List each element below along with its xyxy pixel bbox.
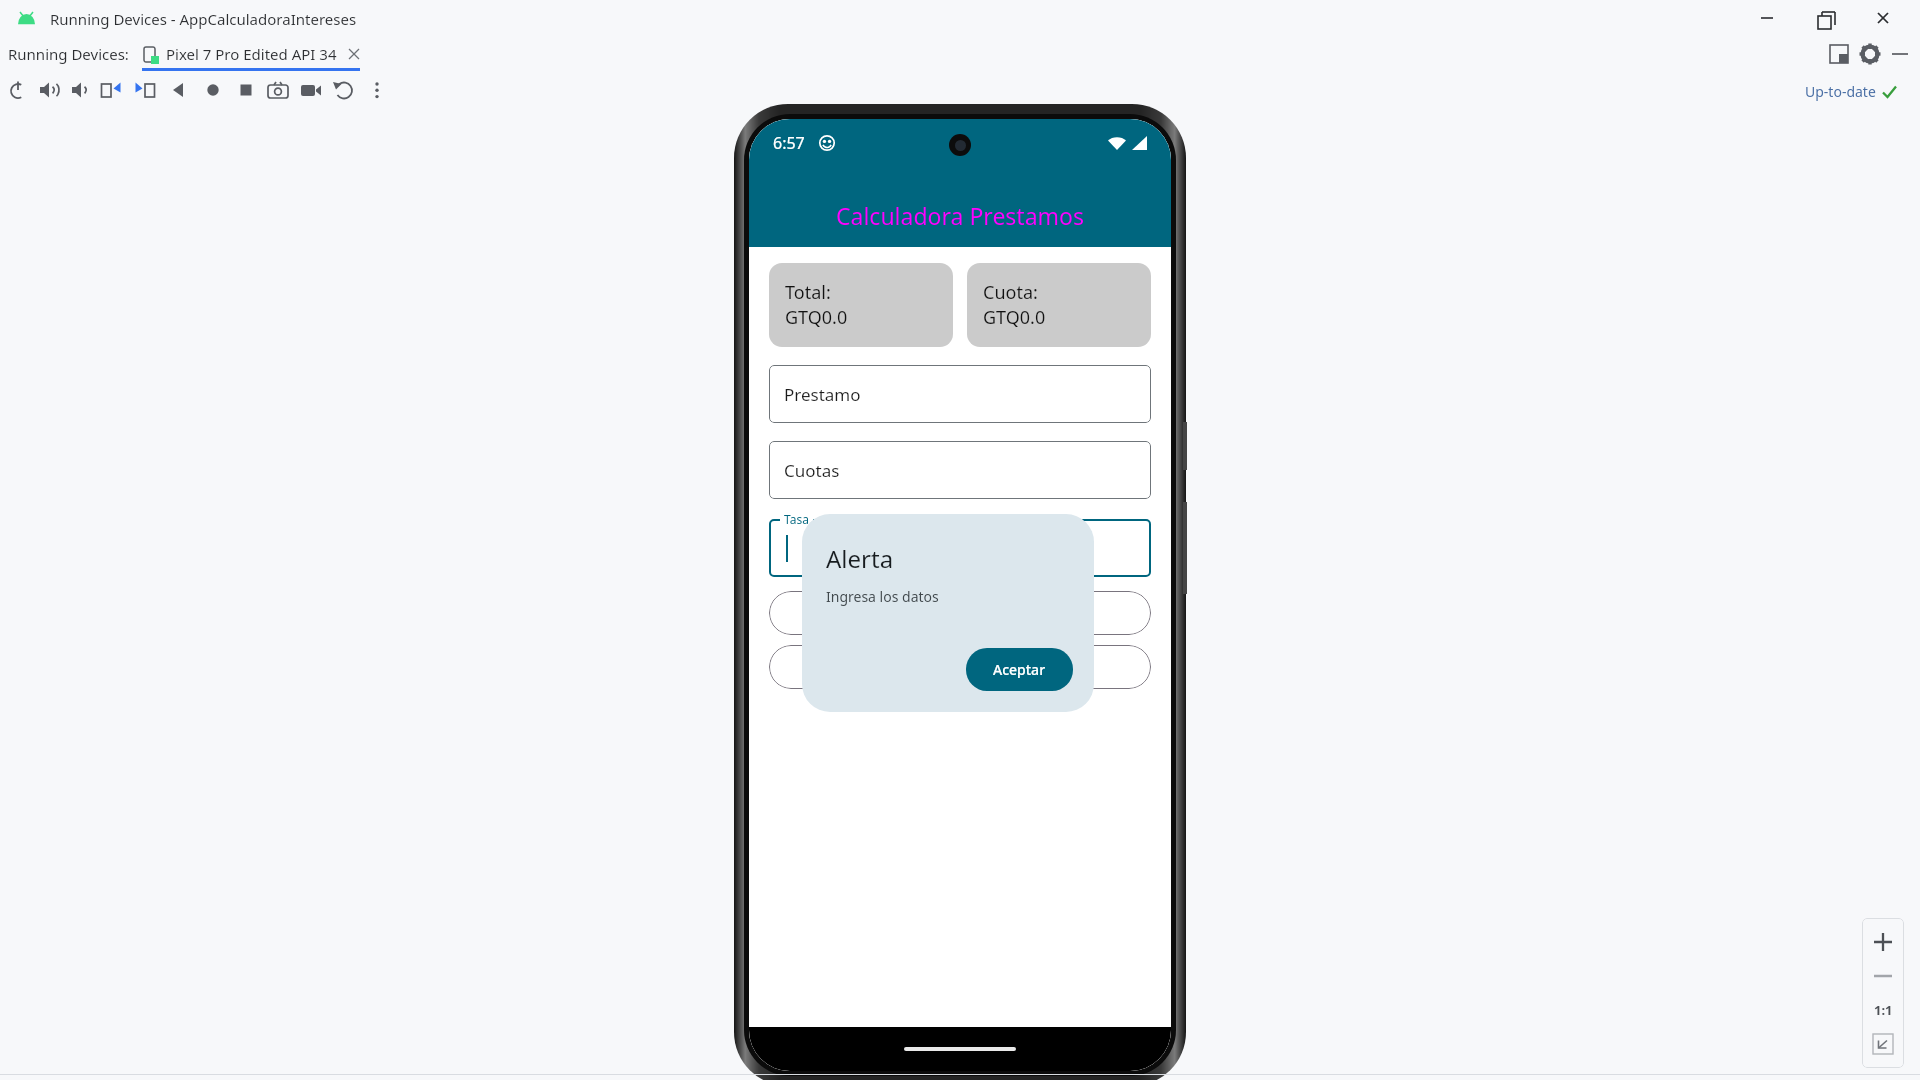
button[interactable]: Zoom in	[1866, 925, 1900, 959]
button[interactable]: Close	[1868, 3, 1898, 33]
button[interactable]: History	[331, 77, 357, 103]
button[interactable]	[769, 519, 1151, 577]
staticText: Pixel 7 Pro Edited API 34	[166, 44, 337, 64]
button[interactable]: Zoom out	[1866, 959, 1900, 993]
staticText: Cuota:	[983, 280, 1038, 305]
button[interactable]: Rotate left	[98, 77, 124, 103]
button[interactable]: Maximize	[1810, 3, 1840, 33]
staticText: Ingresa los datos	[826, 587, 939, 606]
staticText: Alerta	[826, 542, 894, 575]
staticText: Aceptar	[993, 660, 1046, 679]
staticText: Tasa	[784, 511, 809, 527]
button[interactable]: Zoom to fit	[1866, 1027, 1900, 1061]
staticText: Cuotas	[784, 459, 840, 482]
button[interactable]: Volume up	[37, 77, 63, 103]
button[interactable]: Split window	[1827, 42, 1851, 66]
button[interactable]: Pixel 7 Pro Edited API 34	[142, 36, 360, 72]
button[interactable]: Calcular	[769, 591, 1151, 635]
button[interactable]: Total:	[769, 263, 953, 347]
button[interactable]: More options	[364, 77, 390, 103]
staticText: 6:57	[773, 132, 805, 154]
button[interactable]: Overview	[233, 77, 259, 103]
button[interactable]: Power	[5, 77, 31, 103]
staticText: Running Devices:	[8, 44, 129, 64]
button[interactable]: Home	[200, 77, 226, 103]
button[interactable]: Aceptar	[966, 648, 1073, 691]
staticText: Prestamo	[784, 383, 861, 406]
staticText: Total:	[785, 280, 831, 305]
button[interactable]: Cuota:	[967, 263, 1151, 347]
button[interactable]: Record screen	[298, 77, 324, 103]
button[interactable]: Settings	[1858, 42, 1882, 66]
button[interactable]: Rotate right	[132, 77, 158, 103]
staticText: GTQ0.0	[785, 305, 848, 330]
button[interactable]: Limpiar	[769, 645, 1151, 689]
staticText: Running Devices - AppCalculadoraInterese…	[50, 9, 357, 29]
button[interactable]: Back	[167, 77, 193, 103]
staticText: 1:1	[1874, 1001, 1893, 1019]
button[interactable]: Minimize	[1752, 3, 1782, 33]
button[interactable]: Prestamo	[769, 365, 1151, 423]
button[interactable]: Cuotas	[769, 441, 1151, 499]
staticText: GTQ0.0	[983, 305, 1046, 330]
button[interactable]: Volume down	[69, 77, 95, 103]
staticText: Calculadora Prestamos	[749, 200, 1171, 231]
button[interactable]: Hide tool window	[1888, 42, 1912, 66]
button[interactable]: Actual size	[1866, 993, 1900, 1027]
button[interactable]: Take screenshot	[265, 77, 291, 103]
staticText: Up-to-date	[1805, 82, 1876, 101]
